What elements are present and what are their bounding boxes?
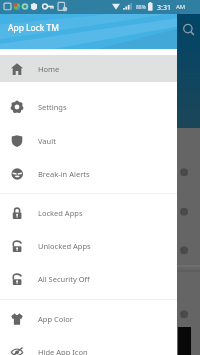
staticText: Home	[38, 64, 60, 74]
staticText: Locked Apps	[38, 208, 83, 218]
staticText: Settings	[38, 102, 67, 112]
button[interactable]: App Color	[0, 302, 177, 336]
staticText: Vault	[38, 136, 56, 146]
staticText: 88%	[136, 4, 146, 11]
button[interactable]: All Security Off	[0, 262, 177, 296]
button[interactable]: Unlocked Apps	[0, 229, 177, 263]
staticText: 3:31	[157, 3, 171, 13]
button[interactable]: Settings	[0, 90, 177, 124]
button[interactable]: Home	[0, 55, 177, 82]
staticText: App Color	[38, 314, 73, 324]
staticText: Break-in Alerts	[38, 169, 90, 179]
button[interactable]: Break-in Alerts	[0, 157, 177, 191]
staticText: App Lock TM	[8, 22, 59, 34]
staticText: AM	[176, 3, 186, 11]
button[interactable]: Search	[182, 23, 196, 37]
button[interactable]: Hide App Icon	[0, 335, 177, 355]
button[interactable]: Locked Apps	[0, 196, 177, 230]
button[interactable]: Vault	[0, 124, 177, 158]
staticText: All Security Off	[38, 274, 90, 284]
staticText: Unlocked Apps	[38, 241, 91, 251]
staticText: Hide App Icon	[38, 347, 88, 355]
